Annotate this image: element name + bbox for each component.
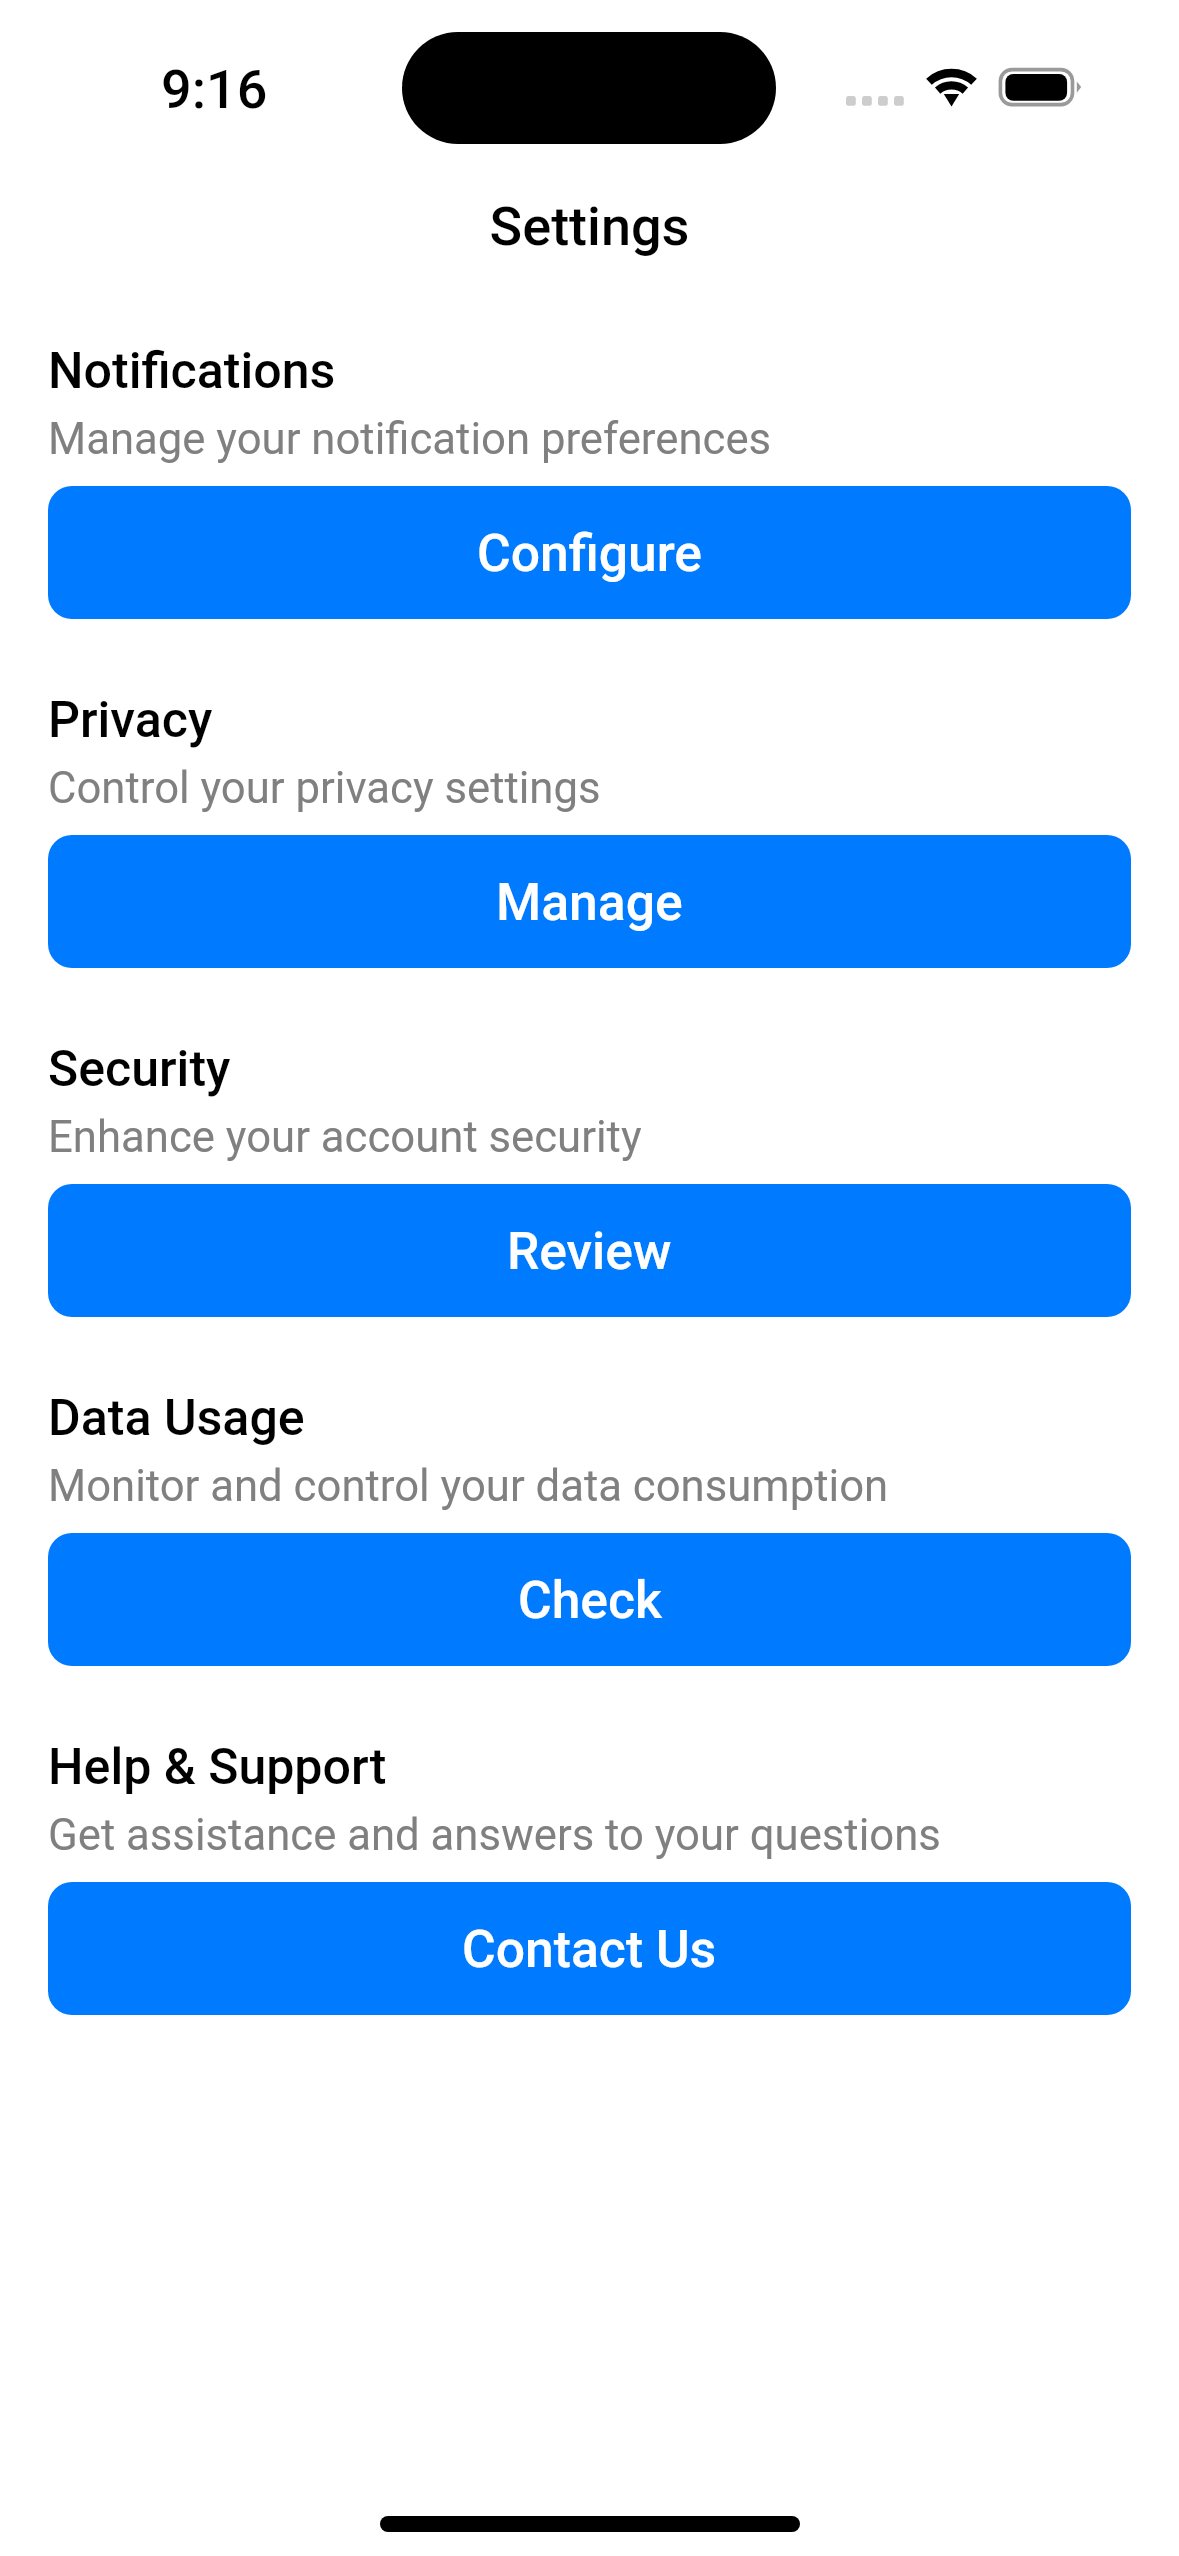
button[interactable]: Manage <box>48 835 1131 968</box>
other: Dynamic island <box>402 32 776 144</box>
staticText: Settings <box>0 195 1179 258</box>
staticText: Help & Support <box>48 1738 387 1797</box>
button[interactable]: Contact Us <box>48 1882 1131 2015</box>
staticText: Privacy <box>48 691 213 750</box>
staticText: Monitor and control your data consumptio… <box>48 1460 889 1511</box>
staticText: Manage <box>496 872 683 932</box>
button[interactable]: Review <box>48 1184 1131 1317</box>
staticText: Manage your notification preferences <box>48 413 772 464</box>
other: Home indicator <box>380 2516 800 2532</box>
staticText: Control your privacy settings <box>48 762 601 813</box>
other: Battery full <box>996 62 1088 112</box>
staticText: Enhance your account security <box>48 1111 642 1162</box>
staticText: Notifications <box>48 342 336 401</box>
staticText: Contact Us <box>462 1919 717 1979</box>
staticText: Configure <box>477 523 703 583</box>
other: Cellular signal <box>846 96 906 110</box>
button[interactable]: Check <box>48 1533 1131 1666</box>
staticText: Security <box>48 1040 231 1099</box>
button[interactable]: Configure <box>48 486 1131 619</box>
staticText: Check <box>518 1570 662 1630</box>
other: Wi-Fi <box>922 62 982 112</box>
staticText: Review <box>507 1221 672 1281</box>
staticText: 9:16 <box>161 58 268 121</box>
staticText: Data Usage <box>48 1389 305 1448</box>
staticText: Get assistance and answers to your quest… <box>48 1809 941 1860</box>
